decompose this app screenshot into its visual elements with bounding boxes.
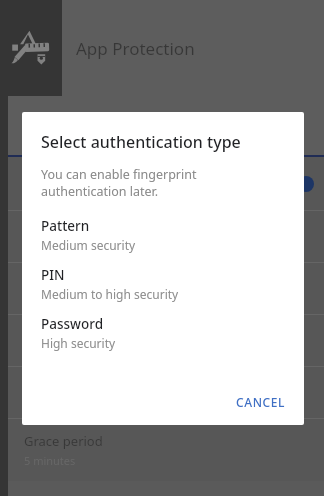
- button[interactable]: Pattern: [22, 216, 304, 254]
- staticText: Medium security: [41, 237, 136, 253]
- staticText: Grace period: [24, 432, 103, 450]
- button[interactable]: Password: [22, 314, 304, 352]
- button[interactable]: [0, 211, 324, 263]
- button[interactable]: Grace period: [0, 419, 324, 481]
- staticText: High security: [41, 335, 116, 351]
- staticText: Password: [41, 315, 104, 333]
- button[interactable]: [0, 315, 324, 367]
- button[interactable]: PIN: [22, 265, 304, 303]
- staticText: 5 minutes: [24, 453, 76, 468]
- staticText: Select authentication type: [41, 131, 241, 153]
- staticText: App Protection: [76, 37, 195, 60]
- staticText: Pattern: [41, 217, 90, 235]
- button[interactable]: G: [0, 157, 324, 211]
- button[interactable]: [0, 367, 324, 419]
- staticText: Medium to high security: [41, 286, 179, 302]
- button[interactable]: L: [0, 96, 324, 155]
- button[interactable]: App icon: [0, 0, 62, 96]
- staticText: CANCEL: [236, 394, 286, 410]
- button[interactable]: CANCEL: [228, 388, 294, 416]
- staticText: PIN: [41, 266, 65, 284]
- staticText: You can enable fingerprint authenticatio…: [41, 166, 274, 200]
- button[interactable]: [0, 263, 324, 315]
